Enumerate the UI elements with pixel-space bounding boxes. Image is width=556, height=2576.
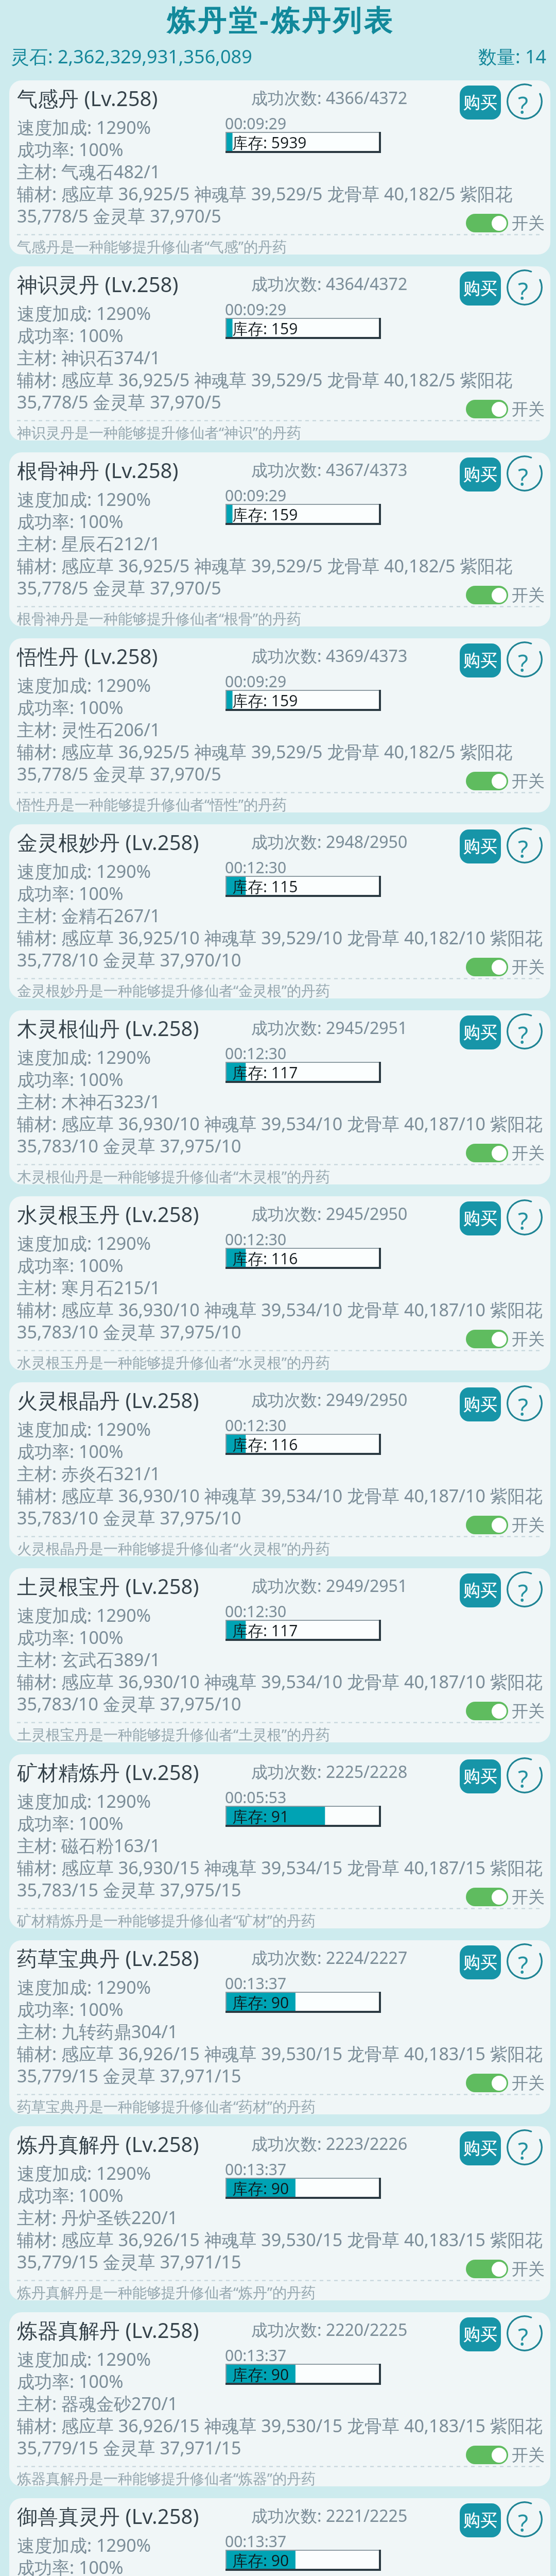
button[interactable]: Help — [507, 269, 543, 306]
button[interactable]: Help — [507, 83, 543, 120]
staticText: 购买 — [463, 1022, 497, 1043]
staticText: 速度加成: 1290% — [17, 1045, 151, 1069]
staticText: 35,778/10 金灵草 37,970/10 — [17, 948, 241, 972]
button[interactable]: 开关 — [466, 1329, 545, 1349]
button[interactable]: 开关 — [466, 771, 545, 791]
staticText: 35,783/10 金灵草 37,975/10 — [17, 1320, 241, 1344]
button[interactable]: 购买 — [460, 1387, 501, 1421]
button[interactable]: Help — [507, 827, 543, 863]
button[interactable]: 购买 — [460, 1759, 501, 1793]
button[interactable]: 御兽真灵丹 (Lv.258) — [9, 2498, 550, 2576]
button[interactable]: 购买 — [460, 1573, 501, 1607]
staticText: 开关 — [512, 585, 545, 605]
staticText: ? — [518, 2134, 528, 2165]
button[interactable]: 购买 — [460, 643, 501, 677]
button[interactable]: 开关 — [466, 1143, 545, 1163]
button[interactable]: 开关 — [466, 2073, 545, 2093]
staticText: 成功次数: 4364/4372 — [251, 273, 408, 295]
button[interactable]: 炼丹真解丹 (Lv.258) — [9, 2126, 550, 2300]
staticText: 成功率: 100% — [17, 1067, 124, 1091]
button[interactable]: 购买 — [460, 86, 501, 120]
button[interactable]: 火灵根晶丹 (Lv.258) — [9, 1382, 550, 1556]
staticText: 00:05:53 — [225, 1787, 287, 1808]
staticText: 主材: 赤炎石321/1 — [17, 1462, 161, 1485]
button[interactable]: Help — [507, 1943, 543, 1979]
button[interactable]: 金灵根妙丹 (Lv.258) — [9, 824, 550, 998]
button[interactable]: 开关 — [466, 1701, 545, 1721]
button[interactable]: 开关 — [466, 1515, 545, 1535]
staticText: 库存: 115 — [232, 876, 298, 897]
button[interactable]: 开关 — [466, 399, 545, 419]
button[interactable]: 药草宝典丹 (Lv.258) — [9, 1940, 550, 2114]
button[interactable]: Help — [507, 2501, 543, 2537]
staticText: 购买 — [463, 1580, 497, 1601]
staticText: 主材: 气魂石482/1 — [17, 160, 161, 183]
button[interactable]: Help — [507, 1385, 543, 1421]
staticText: 库存: 90 — [232, 2550, 289, 2571]
button[interactable]: Help — [507, 1013, 543, 1049]
button[interactable]: 开关 — [466, 1887, 545, 1907]
button[interactable]: 开关 — [466, 2445, 545, 2465]
staticText: 炼丹真解丹是一种能够提升修仙者“炼丹”的丹药 — [17, 2282, 316, 2300]
button[interactable]: 购买 — [460, 1945, 501, 1979]
staticText: 矿材精炼丹是一种能够提升修仙者“矿材”的丹药 — [17, 1910, 316, 1928]
staticText: 库存: 90 — [232, 2178, 289, 2199]
staticText: 购买 — [463, 650, 497, 671]
staticText: 35,778/5 金灵草 37,970/5 — [17, 204, 221, 228]
button[interactable]: Help — [507, 2315, 543, 2351]
button[interactable]: Help — [507, 1199, 543, 1235]
staticText: 速度加成: 1290% — [17, 2347, 151, 2371]
button[interactable]: 木灵根仙丹 (Lv.258) — [9, 1010, 550, 1184]
button[interactable]: Help — [507, 641, 543, 677]
staticText: 炼丹堂-炼丹列表 — [167, 0, 395, 39]
button[interactable]: 购买 — [460, 457, 501, 492]
staticText: 炼器真解丹是一种能够提升修仙者“炼器”的丹药 — [17, 2468, 316, 2486]
button[interactable]: 悟性丹 (Lv.258) — [9, 638, 550, 812]
button[interactable]: 购买 — [460, 2317, 501, 2351]
button[interactable]: 购买 — [460, 1201, 501, 1235]
button[interactable]: 开关 — [466, 957, 545, 977]
button[interactable]: 购买 — [460, 1015, 501, 1049]
staticText: 主材: 器魂金砂270/1 — [17, 2392, 178, 2415]
button[interactable]: 矿材精炼丹 (Lv.258) — [9, 1754, 550, 1928]
staticText: 主材: 九转药鼎304/1 — [17, 2020, 178, 2043]
button[interactable]: Help — [507, 2129, 543, 2165]
staticText: 库存: 90 — [232, 2364, 289, 2385]
button[interactable]: 神识灵丹 (Lv.258) — [9, 266, 550, 440]
button[interactable]: Help — [507, 1571, 543, 1607]
staticText: 火灵根晶丹是一种能够提升修仙者“火灵根”的丹药 — [17, 1538, 331, 1556]
staticText: 灵石: 2,362,329,931,356,089 — [11, 44, 252, 69]
button[interactable]: 购买 — [460, 272, 501, 306]
staticText: 辅材: 感应草 36,930/10 神魂草 39,534/10 龙骨草 40,1… — [17, 1112, 543, 1136]
button[interactable]: 购买 — [460, 2503, 501, 2537]
staticText: 木灵根仙丹是一种能够提升修仙者“木灵根”的丹药 — [17, 1166, 331, 1184]
button[interactable]: 购买 — [460, 2131, 501, 2165]
button[interactable]: Help — [507, 455, 543, 492]
staticText: 主材: 星辰石212/1 — [17, 532, 161, 555]
staticText: 成功次数: 2223/2226 — [251, 2132, 408, 2155]
button[interactable]: 购买 — [460, 829, 501, 863]
button[interactable]: 开关 — [466, 585, 545, 605]
staticText: 水灵根玉丹是一种能够提升修仙者“水灵根”的丹药 — [17, 1352, 331, 1370]
staticText: 库存: 116 — [232, 1248, 298, 1269]
button[interactable]: 开关 — [466, 213, 545, 233]
button[interactable]: 水灵根玉丹 (Lv.258) — [9, 1196, 550, 1370]
button[interactable]: 根骨神丹 (Lv.258) — [9, 452, 550, 626]
staticText: ? — [518, 1205, 528, 1235]
staticText: ? — [518, 833, 528, 863]
button[interactable]: Help — [507, 1757, 543, 1793]
staticText: 成功率: 100% — [17, 1439, 124, 1463]
staticText: 气感丹是一种能够提升修仙者“气感”的丹药 — [17, 236, 287, 255]
button[interactable]: 炼器真解丹 (Lv.258) — [9, 2312, 550, 2486]
button[interactable]: 开关 — [466, 2259, 545, 2279]
staticText: 35,783/10 金灵草 37,975/10 — [17, 1692, 241, 1716]
staticText: 成功率: 100% — [17, 696, 124, 719]
staticText: 辅材: 感应草 36,926/15 神魂草 39,530/15 龙骨草 40,1… — [17, 2414, 543, 2437]
staticText: 00:13:37 — [225, 2531, 287, 2552]
button[interactable]: 土灵根宝丹 (Lv.258) — [9, 1568, 550, 1742]
staticText: 成功次数: 2945/2951 — [251, 1016, 408, 1039]
button[interactable]: 气感丹 (Lv.258) — [9, 80, 550, 255]
staticText: 购买 — [463, 92, 497, 113]
staticText: 购买 — [463, 2138, 497, 2159]
staticText: 开关 — [512, 1143, 545, 1163]
